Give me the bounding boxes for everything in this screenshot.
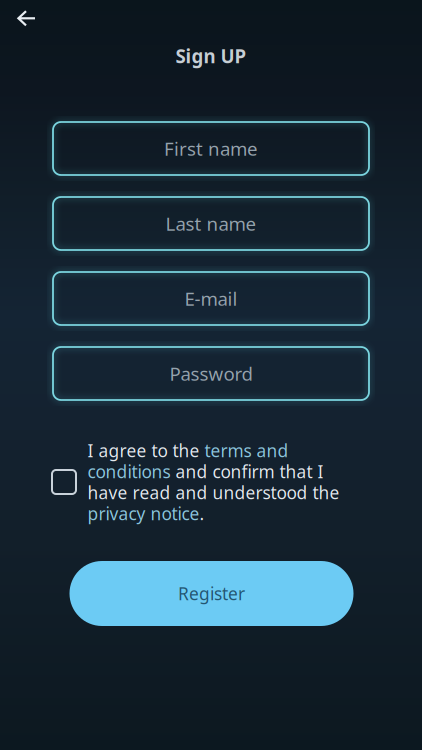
staticText: First name <box>164 136 258 161</box>
staticText: Password <box>169 361 252 386</box>
staticText: I agree to the terms and conditions and … <box>87 439 339 525</box>
button[interactable]: E-mail <box>53 272 369 325</box>
staticText: E-mail <box>184 286 237 311</box>
staticText: Last name <box>165 211 256 236</box>
staticText: Sign UP <box>175 44 246 68</box>
staticText: Register <box>178 582 245 605</box>
button[interactable]: Agree to terms and conditions <box>52 470 76 494</box>
button[interactable]: First name <box>53 122 369 175</box>
button[interactable]: Back <box>0 0 52 40</box>
button[interactable]: Password <box>53 347 369 400</box>
button[interactable]: Register <box>69 561 353 626</box>
button[interactable]: Last name <box>53 197 369 250</box>
